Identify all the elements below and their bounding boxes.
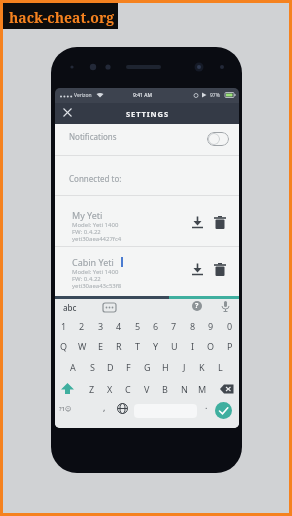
button[interactable]: M [193,378,211,400]
staticText: B [162,383,168,395]
button[interactable] [191,263,204,276]
button[interactable]: Q [55,335,73,356]
staticText: Z [89,383,95,395]
button[interactable]: K [193,356,211,378]
button[interactable]: S [83,356,101,378]
button[interactable] [214,263,226,276]
button[interactable]: R [110,335,128,356]
staticText: Cabin Yeti [72,256,114,268]
staticText: 6 [153,320,159,332]
button[interactable]: G [138,356,156,378]
button[interactable]: C [119,378,137,400]
button[interactable]: Z [83,378,101,400]
staticText: 5 [135,320,141,332]
staticText: ?1☺ [59,405,72,413]
staticText: yeti30aea4427fc4 [72,235,122,243]
staticText: M [198,383,207,395]
button[interactable]: hack-cheat.org [3,3,118,29]
staticText: Model: Yeti 1400 [72,221,119,229]
button[interactable]: 4 [110,316,128,335]
button[interactable] [55,124,239,155]
staticText: U [171,340,178,352]
staticText: Notifications [69,131,117,142]
button[interactable]: T [129,335,147,356]
staticText: A [70,361,76,373]
button[interactable]: D [101,356,119,378]
staticText: 0 [227,320,233,332]
button[interactable]: B [156,378,174,400]
button[interactable] [214,216,226,229]
button[interactable]: N [175,378,193,400]
staticText: FW: 0.4.22 [72,228,101,236]
button[interactable]: 1 [55,316,73,335]
staticText: . [205,399,208,411]
staticText: Y [153,340,159,352]
button[interactable]: L [211,356,229,378]
button[interactable] [191,216,204,229]
button[interactable] [117,403,128,414]
staticText: hack-cheat.org [9,8,115,27]
staticText: E [98,340,104,352]
button[interactable]: O [202,335,220,356]
button[interactable]: 9 [202,316,220,335]
staticText: Connected to: [69,173,122,184]
button[interactable] [221,301,230,313]
button[interactable] [215,402,232,419]
staticText: Verizon [74,92,92,99]
button[interactable] [207,132,229,146]
staticText: abc [63,302,77,313]
button[interactable]: F [119,356,137,378]
button[interactable]: P [221,335,239,356]
button[interactable]: X [101,378,119,400]
staticText: , [103,401,106,413]
staticText: yeti30aea43c53f8 [72,282,122,290]
staticText: 4 [116,320,122,332]
button[interactable]: Y [147,335,165,356]
staticText: Q [60,340,68,352]
button[interactable]: 5 [129,316,147,335]
button[interactable] [61,383,74,395]
staticText: V [144,383,150,395]
staticText: Model: Yeti 1400 [72,268,119,276]
staticText: C [125,383,131,395]
staticText: 9 [208,320,214,332]
staticText: 8 [190,320,196,332]
staticText: My Yeti [72,209,103,221]
button[interactable]: 6 [147,316,165,335]
button[interactable]: U [165,335,183,356]
button[interactable]: 3 [92,316,110,335]
staticText: S [90,361,95,373]
button[interactable]: 0 [221,316,239,335]
button[interactable]: ? [192,301,202,311]
staticText: X [107,383,113,395]
staticText: O [207,340,215,352]
button[interactable]: H [156,356,174,378]
button[interactable]: V [138,378,156,400]
staticText: D [107,361,114,373]
staticText: I [191,340,195,352]
staticText: 97% [210,92,220,99]
button[interactable]: 8 [184,316,202,335]
button[interactable] [63,108,72,117]
button[interactable] [103,303,116,313]
staticText: 1 [61,320,67,332]
button[interactable]: W [73,335,91,356]
staticText: F [126,361,131,373]
staticText: T [135,340,141,352]
staticText: G [144,361,151,373]
button[interactable]: I [184,335,202,356]
button[interactable]: A [64,356,82,378]
staticText: J [183,361,186,373]
staticText: 9:41 AM [133,92,152,99]
staticText: 7 [171,320,177,332]
staticText: L [218,361,223,373]
staticText: ? [195,301,199,311]
staticText: H [162,361,169,373]
button[interactable]: 7 [165,316,183,335]
button[interactable]: J [175,356,193,378]
staticText: P [227,340,233,352]
button[interactable]: 2 [73,316,91,335]
button[interactable] [220,384,234,394]
button[interactable]: E [92,335,110,356]
